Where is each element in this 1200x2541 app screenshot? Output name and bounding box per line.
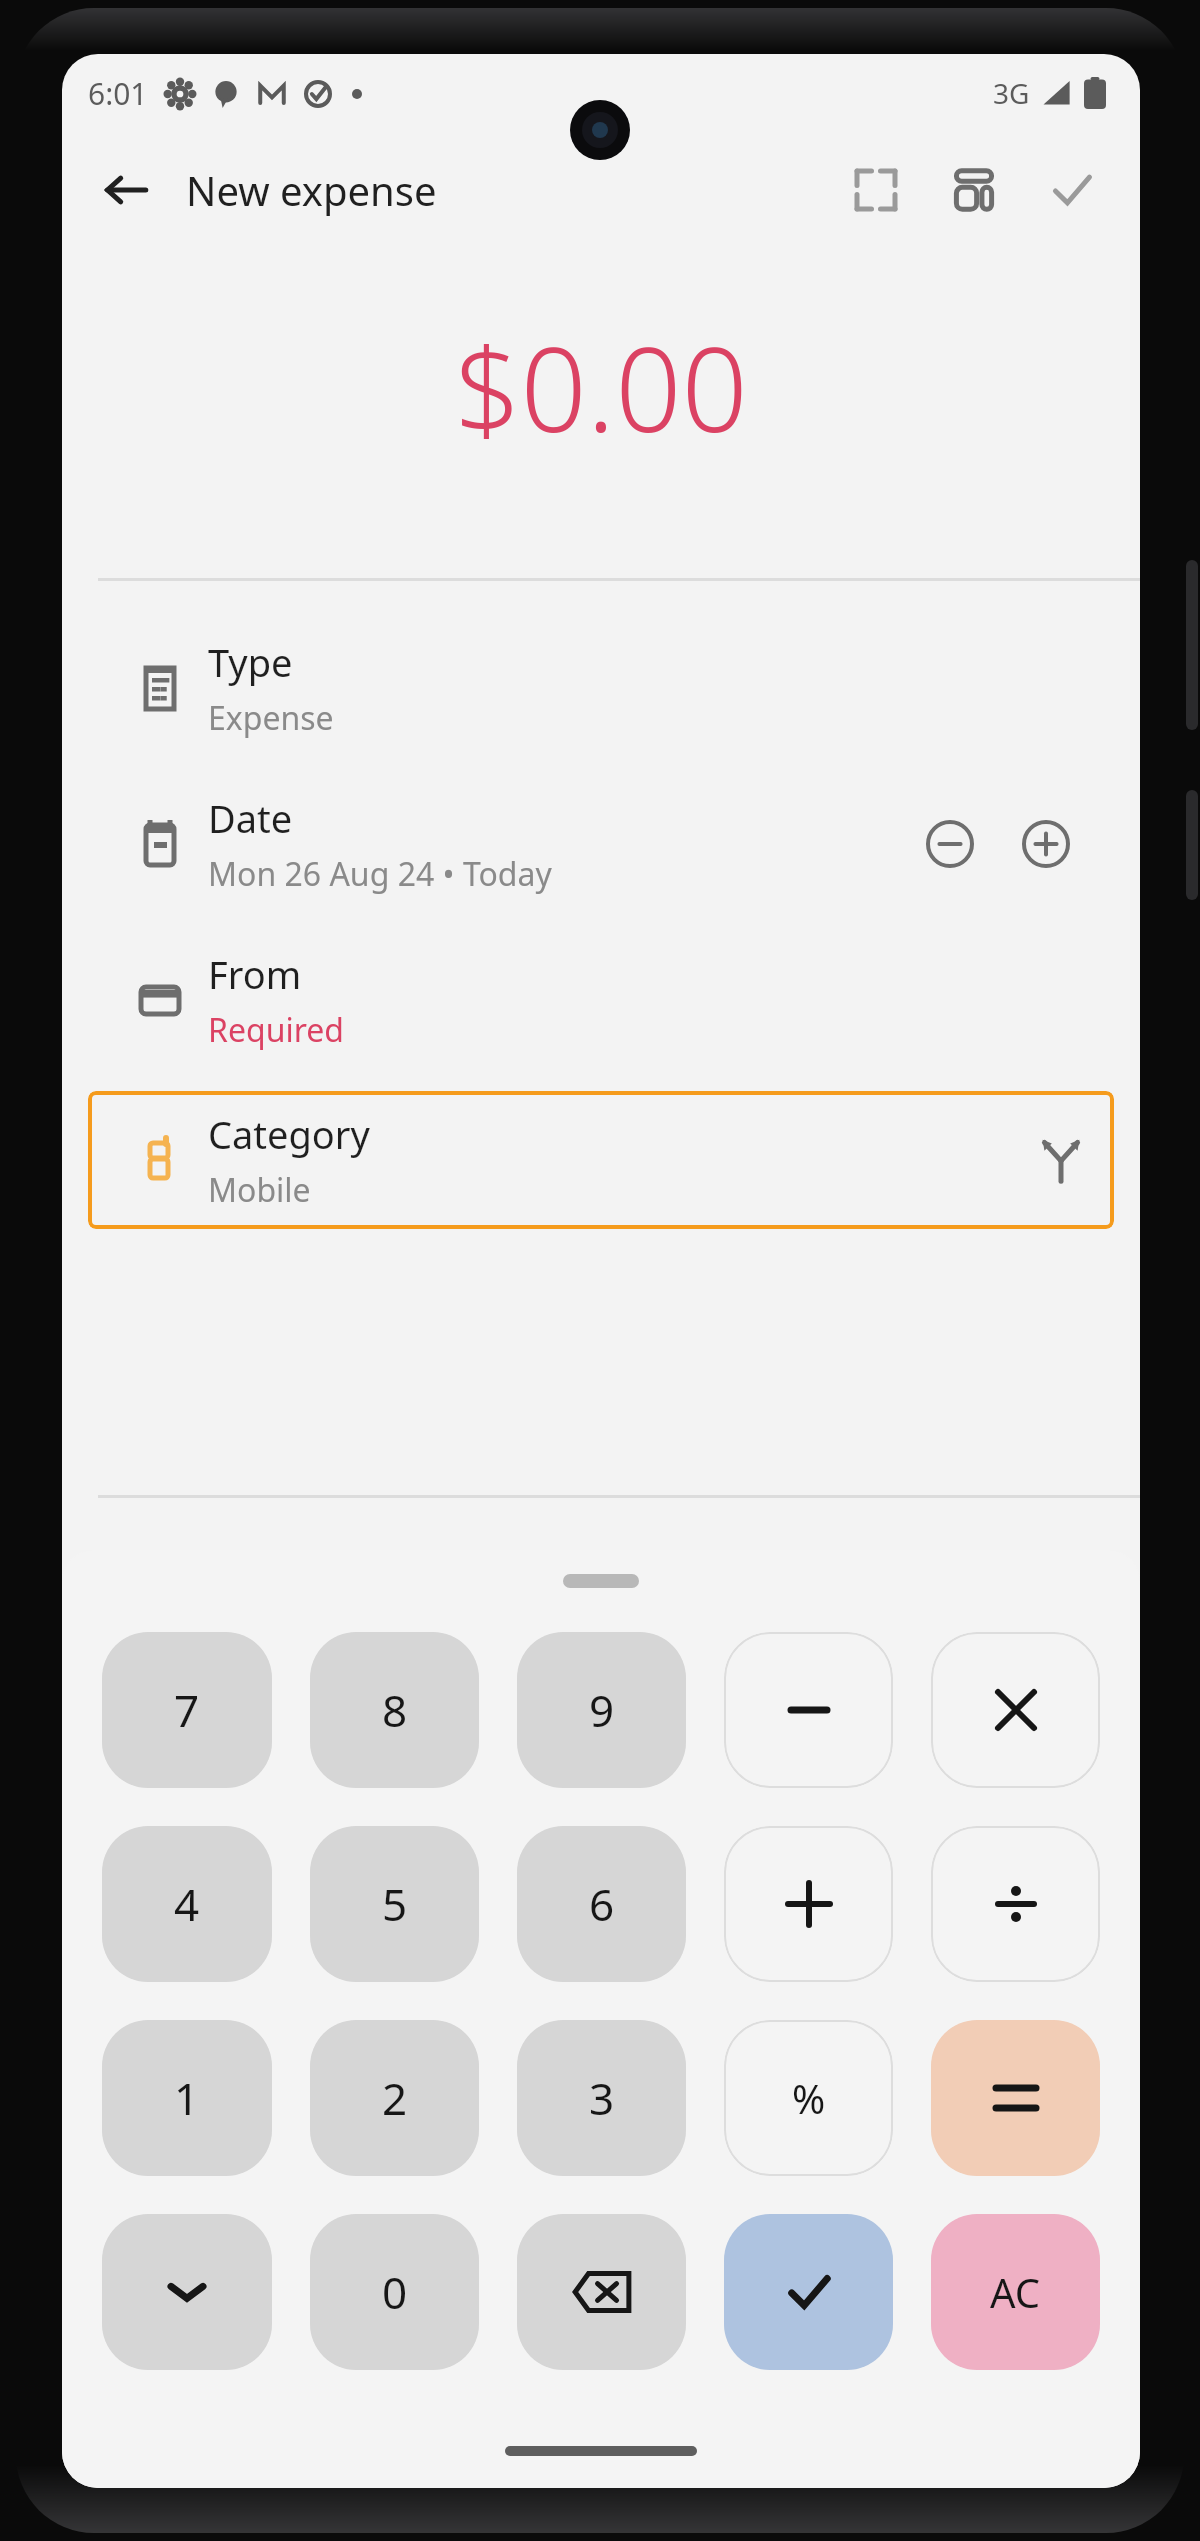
button[interactable]: 0 — [310, 2214, 479, 2370]
button[interactable]: Percent — [724, 2020, 893, 2176]
button[interactable]: Type — [62, 629, 1140, 747]
button[interactable]: Category — [88, 1091, 1114, 1229]
staticText: Date — [208, 792, 293, 844]
button[interactable]: 2 — [310, 2020, 479, 2176]
staticText: Required — [208, 1008, 344, 1052]
button[interactable]: Next day — [1008, 806, 1084, 882]
staticText: 0 — [382, 2262, 408, 2322]
staticText: % — [792, 2071, 826, 2125]
button[interactable]: Date — [62, 785, 1140, 903]
staticText: 3 — [589, 2068, 615, 2128]
button[interactable]: Backspace — [517, 2214, 686, 2370]
staticText: 4 — [174, 1874, 200, 1934]
button[interactable]: 8 — [310, 1632, 479, 1788]
staticText: AC — [990, 2265, 1041, 2319]
button[interactable]: Hide keypad — [102, 2214, 272, 2370]
button[interactable]: Save — [1030, 148, 1114, 232]
staticText: 2 — [382, 2068, 408, 2128]
button[interactable]: Layout — [932, 148, 1016, 232]
staticText: Category — [208, 1108, 370, 1160]
button[interactable]: 4 — [102, 1826, 272, 1982]
button[interactable]: Confirm — [724, 2214, 893, 2370]
staticText: 8 — [382, 1680, 408, 1740]
button[interactable]: 5 — [310, 1826, 479, 1982]
button[interactable]: 6 — [517, 1826, 686, 1982]
staticText: 9 — [589, 1680, 615, 1740]
button[interactable]: All clear — [931, 2214, 1100, 2370]
button[interactable]: 3 — [517, 2020, 686, 2176]
button[interactable]: Divide — [931, 1826, 1100, 1982]
staticText: From — [208, 948, 302, 1000]
button[interactable]: Scan — [834, 148, 918, 232]
staticText: Expense — [208, 696, 334, 740]
button[interactable]: Minus — [724, 1632, 893, 1788]
button[interactable]: Equals — [931, 2020, 1100, 2176]
button[interactable]: From — [62, 941, 1140, 1059]
button[interactable]: Plus — [724, 1826, 893, 1982]
staticText: 6:01 — [88, 73, 148, 114]
staticText: Mon 26 Aug 24 • Today — [208, 852, 552, 896]
staticText: 7 — [174, 1680, 200, 1740]
staticText: Mobile — [208, 1168, 311, 1212]
button[interactable]: 9 — [517, 1632, 686, 1788]
button[interactable]: Previous day — [912, 806, 988, 882]
button[interactable]: 7 — [102, 1632, 272, 1788]
staticText: New expense — [186, 163, 437, 217]
staticText: Type — [208, 636, 293, 688]
button[interactable]: 1 — [102, 2020, 272, 2176]
staticText: $0.00 — [454, 308, 748, 466]
button[interactable]: Multiply — [931, 1632, 1100, 1788]
staticText: 6 — [589, 1874, 615, 1934]
staticText: 1 — [174, 2068, 200, 2128]
button[interactable]: Back — [84, 148, 168, 232]
staticText: 3G — [993, 74, 1030, 112]
staticText: 5 — [382, 1874, 408, 1934]
